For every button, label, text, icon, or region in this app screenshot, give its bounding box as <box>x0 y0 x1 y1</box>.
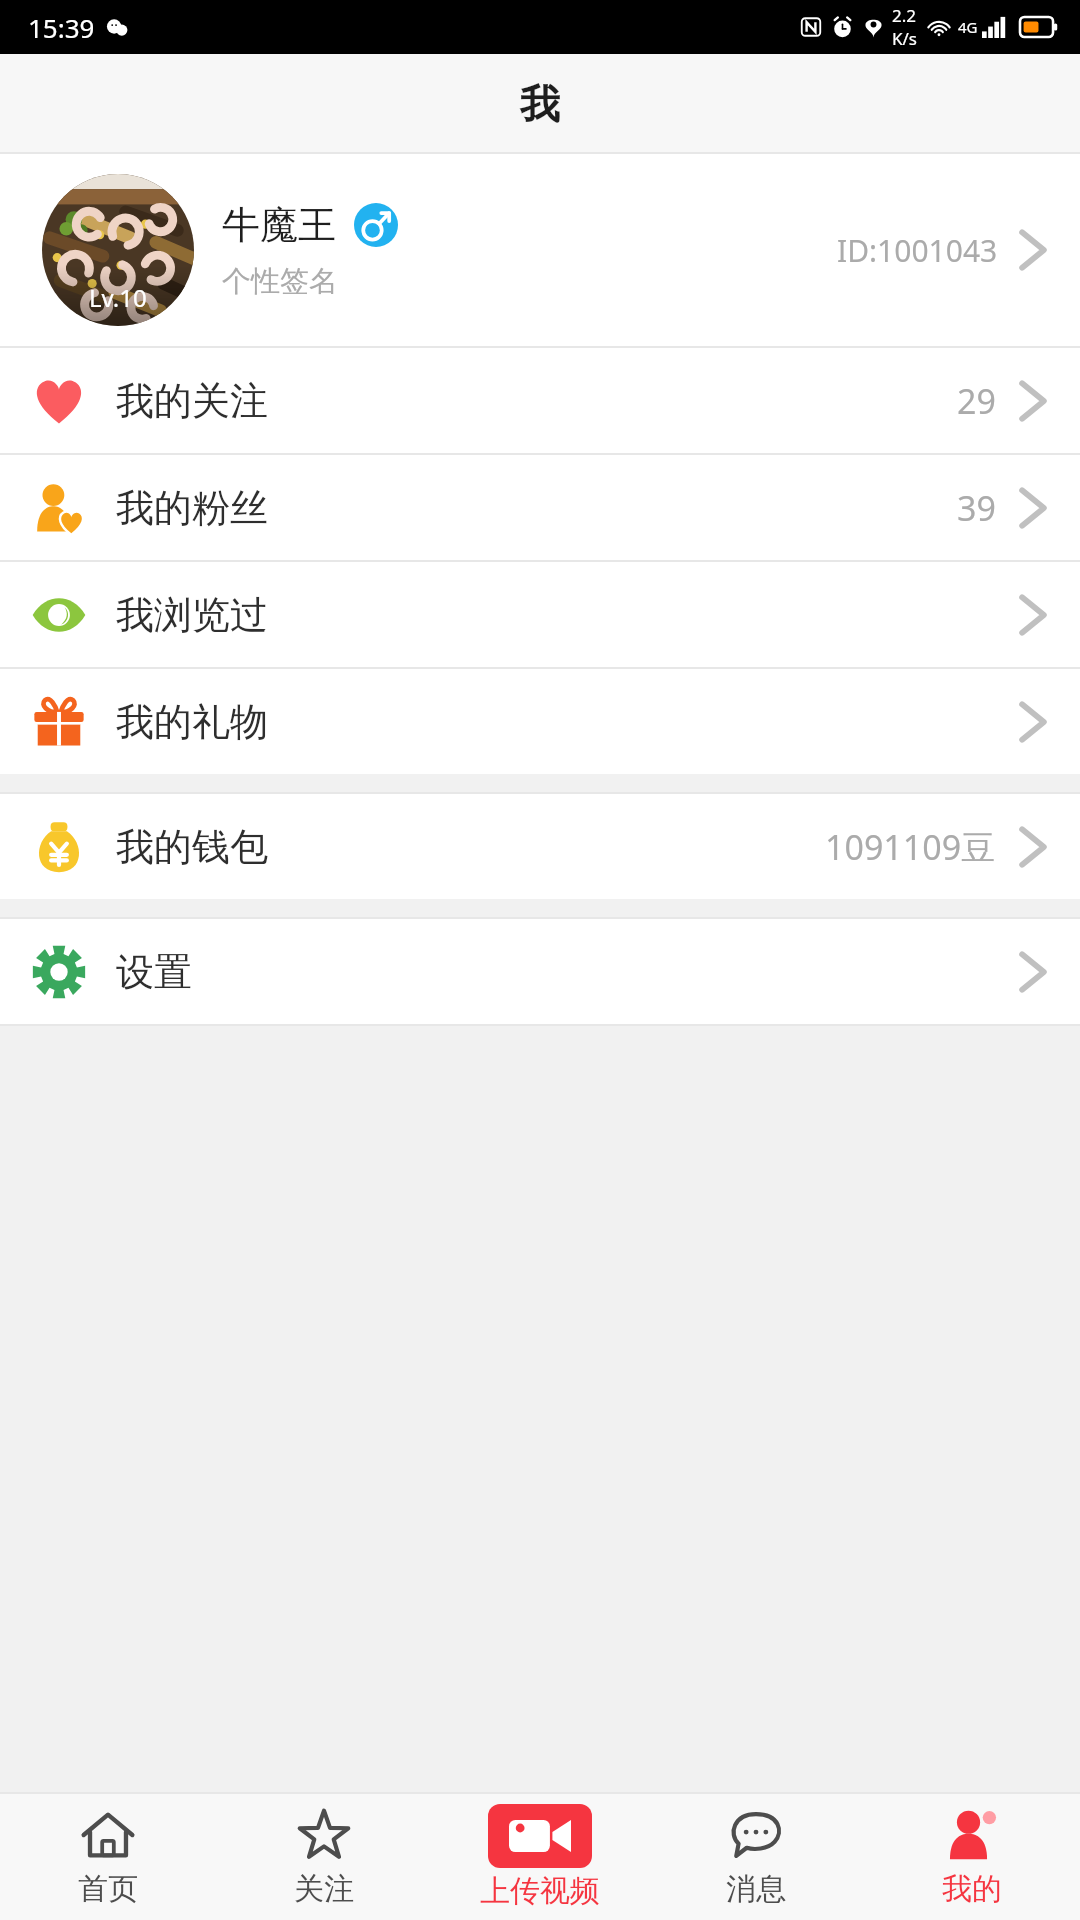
staticText: 2.2 <box>892 4 917 27</box>
staticText: 1091109豆 <box>825 824 996 870</box>
staticText: 我的礼物 <box>116 698 1016 746</box>
staticText: 我的粉丝 <box>116 484 957 532</box>
staticText: 29 <box>957 378 996 424</box>
button[interactable]: Settings <box>0 919 1080 1024</box>
button[interactable]: Browsing history <box>0 562 1080 667</box>
button[interactable]: Lv.10 <box>0 154 1080 346</box>
staticText: 关注 <box>294 1870 354 1908</box>
staticText: 我浏览过 <box>116 591 1016 639</box>
staticText: K/s <box>892 27 917 50</box>
staticText: 39 <box>957 485 996 531</box>
staticText: 上传视频 <box>480 1872 600 1910</box>
staticText: Lv.10 <box>89 281 147 314</box>
button[interactable]: 我的 <box>864 1794 1080 1920</box>
button[interactable]: 关注 <box>216 1794 432 1920</box>
staticText: 首页 <box>78 1870 138 1908</box>
staticText: 我的关注 <box>116 377 957 425</box>
button[interactable]: 首页 <box>0 1794 216 1920</box>
staticText: 我 <box>520 79 560 129</box>
button[interactable]: My gifts <box>0 669 1080 774</box>
button[interactable]: 消息 <box>648 1794 864 1920</box>
staticText: ID:1001043 <box>837 230 998 271</box>
button[interactable]: 上传视频 <box>432 1794 648 1920</box>
staticText: 4G <box>958 17 978 37</box>
staticText: 牛魔王 <box>222 201 336 249</box>
staticText: 消息 <box>726 1870 786 1908</box>
staticText: 15:39 <box>28 10 95 45</box>
staticText: 设置 <box>116 948 1016 996</box>
button[interactable]: My follows <box>0 348 1080 453</box>
staticText: 我的钱包 <box>116 823 825 871</box>
button[interactable]: My wallet <box>0 794 1080 899</box>
staticText: 个性签名 <box>222 263 338 300</box>
button[interactable]: My fans <box>0 455 1080 560</box>
staticText: 我的 <box>942 1870 1002 1908</box>
